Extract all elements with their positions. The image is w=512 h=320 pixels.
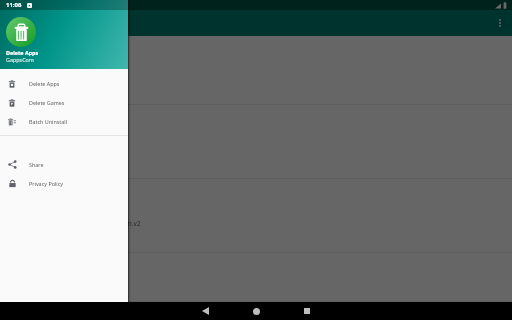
staticText: com.gappscom.deleteapps.application.v2 [14, 219, 141, 228]
button[interactable]: Delete Games [0, 93, 128, 112]
button[interactable]: Application Name [0, 179, 512, 253]
staticText: GappsCom [6, 56, 34, 63]
button[interactable]: Delete Apps [0, 74, 128, 93]
button[interactable]: Privacy Policy [0, 174, 128, 193]
staticText: com.gappscom.deleteapps.one [14, 76, 110, 85]
staticText: Privacy Policy [29, 180, 64, 187]
staticText: Application Name [56, 46, 119, 56]
button[interactable]: Back [190, 302, 220, 320]
staticText: Delete Apps [29, 80, 60, 87]
button[interactable]: More options [491, 14, 509, 32]
button[interactable]: Batch Uninstall [0, 112, 128, 131]
staticText: Delete Games [29, 99, 65, 106]
button[interactable]: Application Name [0, 36, 512, 105]
staticText: Batch Uninstall [29, 118, 68, 125]
staticText: Application Name [56, 115, 119, 125]
button[interactable]: Recents [292, 302, 322, 320]
button[interactable]: Application Name [0, 253, 512, 302]
staticText: Share [29, 161, 44, 168]
button[interactable]: Share [0, 155, 128, 174]
staticText: Delete Apps [6, 49, 39, 56]
button[interactable]: Application Name [0, 105, 512, 179]
staticText: 12.4 MB [56, 59, 79, 67]
button[interactable]: Home [241, 302, 271, 320]
staticText: 11:06 [6, 1, 22, 9]
staticText: 12.4 MB [56, 128, 79, 136]
